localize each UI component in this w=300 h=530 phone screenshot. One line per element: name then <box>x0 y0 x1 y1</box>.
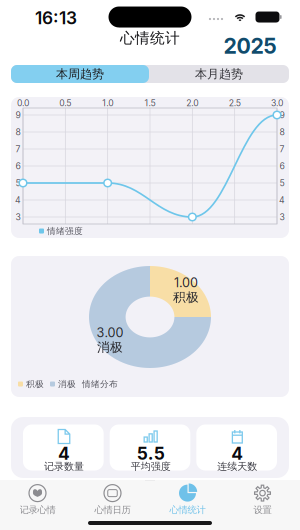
button[interactable]: 4 <box>196 424 277 470</box>
staticText: 5.5 <box>137 443 165 464</box>
button[interactable]: 设置 <box>225 483 300 517</box>
staticText: 记录数量 <box>44 460 84 473</box>
staticText: 消极 <box>58 378 76 389</box>
button[interactable]: 本周趋势 <box>11 65 149 83</box>
button[interactable]: 4 <box>23 424 104 470</box>
staticText: 本周趋势 <box>56 66 104 81</box>
staticText: 设置 <box>253 504 271 516</box>
staticText: 心情日历 <box>94 504 130 516</box>
staticText: 本月趋势 <box>195 66 243 81</box>
button[interactable]: 2025 <box>220 36 280 56</box>
staticText: 3.0 <box>271 98 283 108</box>
staticText: 7 <box>279 144 284 154</box>
staticText: 2025 <box>223 33 276 59</box>
staticText: 4 <box>58 443 70 464</box>
staticText: 16:13 <box>35 7 77 28</box>
staticText: 连续天数 <box>217 460 257 473</box>
staticText: 情绪强度 <box>47 225 83 236</box>
button[interactable]: 5.5 <box>110 424 190 470</box>
staticText: 6 <box>15 161 20 171</box>
staticText: 3 <box>15 212 20 222</box>
staticText: 4 <box>279 195 285 205</box>
button[interactable]: 心情日历 <box>75 483 150 517</box>
staticText: 积极 <box>173 289 199 305</box>
staticText: 7 <box>15 144 20 154</box>
staticText: 5 <box>279 178 284 188</box>
staticText: 心情统计 <box>120 29 180 47</box>
staticText: 3 <box>279 212 284 222</box>
staticText: 情绪分布 <box>82 378 118 389</box>
staticText: 9 <box>15 110 20 120</box>
staticText: 4 <box>231 443 243 464</box>
staticText: 积极 <box>26 378 44 389</box>
staticText: 9 <box>279 110 284 120</box>
button[interactable]: 心情统计 <box>150 483 225 517</box>
staticText: 0.0 <box>17 98 29 108</box>
button[interactable]: 记录心情 <box>0 483 75 517</box>
staticText: 8 <box>279 127 284 137</box>
staticText: 0.5 <box>59 98 71 108</box>
staticText: 平均强度 <box>131 460 171 473</box>
staticText: 4 <box>15 195 21 205</box>
staticText: 心情统计 <box>169 504 205 516</box>
staticText: 3.00 <box>96 325 123 340</box>
staticText: 2.0 <box>186 98 198 108</box>
staticText: 消极 <box>97 339 123 355</box>
staticText: 1.5 <box>144 98 155 108</box>
staticText: 1.0 <box>102 98 113 108</box>
staticText: 6 <box>279 161 284 171</box>
button[interactable]: 本月趋势 <box>149 65 289 83</box>
staticText: 记录心情 <box>19 504 55 516</box>
staticText: 1.00 <box>174 275 198 290</box>
staticText: 2.5 <box>229 98 241 108</box>
staticText: 5 <box>15 178 20 188</box>
staticText: 8 <box>15 127 20 137</box>
